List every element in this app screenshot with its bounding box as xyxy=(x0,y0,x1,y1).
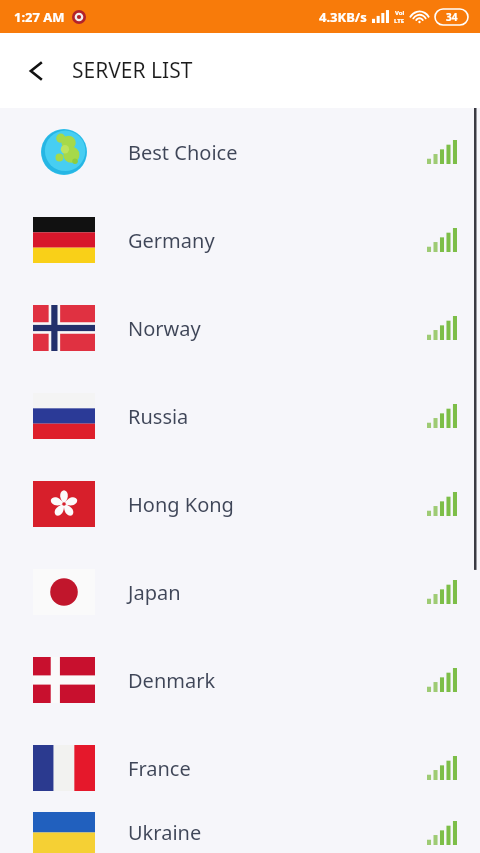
staticText: Germany xyxy=(128,227,427,254)
button[interactable]: Russia xyxy=(0,372,480,460)
staticText: 1:27 AM xyxy=(14,8,65,26)
button[interactable]: Ukraine xyxy=(0,812,480,853)
staticText: 34 xyxy=(446,10,458,24)
staticText: France xyxy=(128,755,427,782)
button[interactable]: Back xyxy=(14,48,60,94)
staticText: Denmark xyxy=(128,667,427,694)
button[interactable]: Best Choice xyxy=(0,108,480,196)
staticText: SERVER LIST xyxy=(72,56,193,85)
button[interactable]: Hong Kong xyxy=(0,460,480,548)
staticText: 4.3KB/s xyxy=(319,8,367,26)
staticText: Norway xyxy=(128,315,427,342)
staticText: Russia xyxy=(128,403,427,430)
button[interactable]: France xyxy=(0,724,480,812)
staticText: LTE xyxy=(394,17,405,25)
button[interactable]: Germany xyxy=(0,196,480,284)
button[interactable]: Denmark xyxy=(0,636,480,724)
staticText: Vol xyxy=(395,9,405,17)
staticText: Hong Kong xyxy=(128,491,427,518)
button[interactable]: Norway xyxy=(0,284,480,372)
staticText: Best Choice xyxy=(128,139,427,166)
staticText: Japan xyxy=(128,579,427,606)
staticText: Ukraine xyxy=(128,819,427,846)
button[interactable]: Japan xyxy=(0,548,480,636)
